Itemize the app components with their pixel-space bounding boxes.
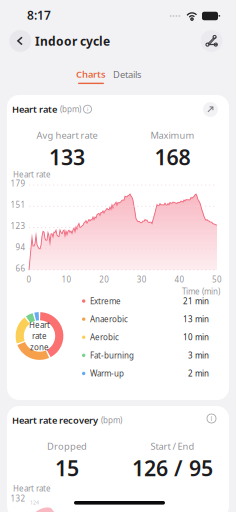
button[interactable]: Back	[9, 30, 31, 52]
staticText: 3 min	[188, 350, 209, 361]
staticText: i	[210, 414, 212, 423]
staticText: 132	[10, 493, 25, 504]
staticText: Fat-burning	[90, 350, 134, 361]
staticText: 124	[30, 499, 39, 506]
staticText: Time (min)	[182, 286, 220, 297]
staticText: i	[87, 106, 88, 113]
staticText: Heart rate	[12, 103, 57, 115]
staticText: 10	[62, 274, 72, 285]
button[interactable]: Charts	[76, 68, 106, 84]
staticText: 133	[49, 143, 85, 171]
staticText: 8:17	[27, 7, 51, 23]
staticText: 123	[10, 220, 25, 231]
staticText: Heart	[29, 320, 50, 330]
staticText: 126 / 95	[132, 454, 213, 482]
staticText: (bpm)	[101, 415, 122, 425]
staticText: 30	[137, 274, 147, 285]
button[interactable]: Share	[200, 30, 222, 52]
staticText: Aerobic	[90, 332, 119, 342]
staticText: Heart rate	[13, 483, 51, 494]
button[interactable]: Details	[110, 66, 144, 82]
staticText: 50	[212, 274, 222, 285]
staticText: 168	[154, 143, 190, 171]
staticText: 20	[99, 274, 109, 285]
staticText: 66	[15, 263, 25, 274]
staticText: Avg heart rate	[36, 129, 97, 141]
staticText: Dropped	[47, 440, 87, 452]
staticText: Heart rate recovery	[12, 414, 98, 426]
staticText: 151	[10, 199, 25, 210]
staticText: 15	[55, 454, 79, 482]
staticText: 21 min	[183, 296, 209, 306]
button[interactable]: Expand chart	[203, 102, 218, 117]
staticText: (bpm)	[60, 104, 81, 114]
staticText: 40	[174, 274, 184, 285]
staticText: 179	[10, 178, 25, 189]
staticText: Indoor cycle	[35, 33, 110, 49]
staticText: rate	[32, 331, 47, 341]
staticText: Maximum	[150, 129, 194, 141]
staticText: Warm-up	[90, 368, 124, 379]
button[interactable]: Info	[207, 414, 216, 423]
staticText: 0	[26, 274, 31, 285]
staticText: Extreme	[90, 296, 121, 306]
staticText: Details	[113, 68, 141, 81]
staticText: 2 min	[188, 368, 209, 379]
staticText: 13 min	[183, 314, 209, 324]
staticText: Charts	[76, 68, 106, 80]
staticText: Anaerobic	[90, 314, 128, 324]
staticText: Start / End	[150, 440, 194, 452]
staticText: zone	[30, 342, 49, 352]
staticText: 10 min	[183, 332, 209, 342]
staticText: 94	[15, 242, 25, 252]
staticText: Heart rate	[13, 169, 51, 180]
